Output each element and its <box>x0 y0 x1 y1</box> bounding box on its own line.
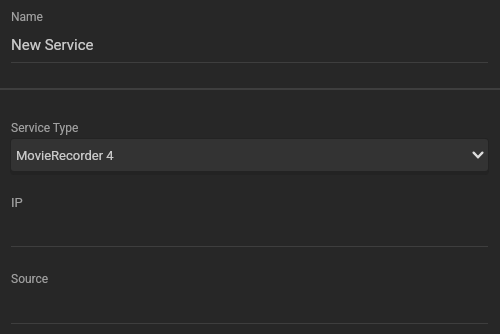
staticText: Source <box>11 272 49 286</box>
staticText: Name <box>11 10 43 24</box>
other: Expand service type <box>469 146 487 164</box>
staticText: MovieRecorder 4 <box>16 148 114 163</box>
staticText: New Service <box>11 36 94 54</box>
staticText: Service Type <box>11 121 79 135</box>
button[interactable]: Name <box>0 0 500 70</box>
button[interactable]: MovieRecorder 4 <box>11 139 488 171</box>
button[interactable]: IP <box>0 184 500 247</box>
button[interactable]: Source <box>0 261 500 324</box>
staticText: IP <box>11 195 23 210</box>
